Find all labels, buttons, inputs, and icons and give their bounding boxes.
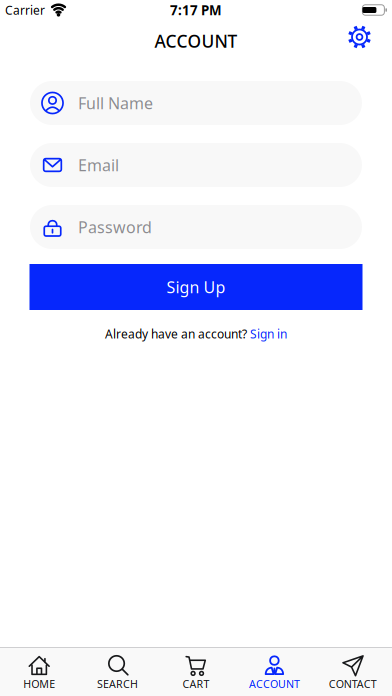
staticText: ACCOUNT: [154, 29, 237, 52]
staticText: Full Name: [78, 92, 153, 114]
staticText: ACCOUNT: [249, 677, 300, 691]
staticText: Carrier: [5, 2, 45, 18]
button[interactable]: SEARCH: [78, 652, 157, 691]
button[interactable]: Sign in: [250, 326, 287, 342]
staticText: CONTACT: [329, 677, 377, 691]
button[interactable]: HOME: [0, 652, 78, 691]
staticText: SEARCH: [97, 677, 138, 691]
button[interactable]: Password: [30, 205, 362, 249]
staticText: HOME: [23, 677, 55, 691]
button[interactable]: Sign Up: [29, 264, 362, 310]
button[interactable]: CART: [157, 652, 235, 691]
button[interactable]: Email: [30, 143, 362, 187]
button[interactable]: ACCOUNT: [235, 652, 314, 691]
staticText: 7:17 PM: [170, 1, 222, 19]
staticText: Email: [78, 154, 119, 176]
button[interactable]: Settings: [347, 24, 372, 49]
staticText: Sign in: [250, 326, 287, 342]
staticText: Already have an account?: [105, 326, 247, 342]
button[interactable]: Full Name: [30, 81, 362, 125]
staticText: CART: [182, 677, 209, 691]
button[interactable]: CONTACT: [314, 652, 392, 691]
staticText: Password: [78, 216, 152, 238]
staticText: Sign Up: [166, 276, 225, 298]
